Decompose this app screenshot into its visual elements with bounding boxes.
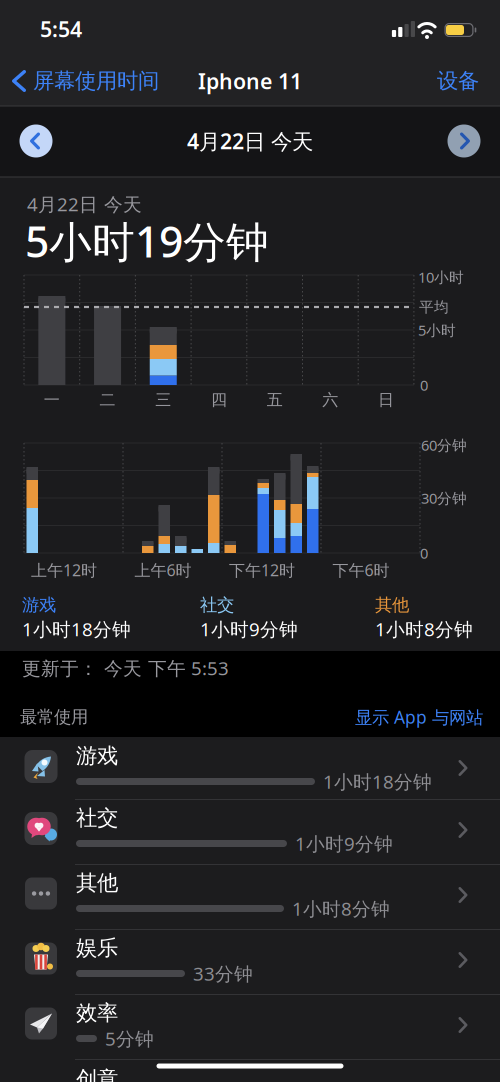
staticText: 一: [44, 390, 60, 410]
button[interactable]: 效率: [0, 995, 500, 1060]
staticText: 1小时18分钟: [323, 769, 432, 794]
staticText: 最常使用: [20, 706, 88, 728]
button[interactable]: 其他: [0, 865, 500, 930]
staticText: 30分钟: [421, 488, 467, 508]
staticText: 33分钟: [193, 961, 253, 986]
staticText: 下午6时: [332, 559, 389, 581]
staticText: 日: [378, 390, 394, 410]
staticText: 4月22日 今天: [187, 127, 313, 155]
button[interactable]: 创意: [0, 1062, 500, 1082]
staticText: 六: [322, 390, 338, 410]
staticText: 社交: [200, 594, 234, 616]
staticText: 设备: [437, 68, 479, 94]
staticText: 1小时8分钟: [292, 896, 390, 921]
staticText: 四: [211, 390, 227, 410]
button[interactable]: 娱乐: [0, 930, 500, 995]
staticText: 显示 App 与网站: [355, 705, 483, 728]
staticText: 五: [267, 390, 283, 410]
button[interactable]: 后一天: [447, 124, 480, 157]
staticText: 更新于： 今天 下午 5:53: [22, 656, 229, 680]
staticText: 平均: [419, 298, 449, 316]
staticText: 上午6时: [134, 559, 191, 581]
staticText: 60分钟: [421, 435, 467, 455]
staticText: 效率: [76, 1000, 118, 1026]
staticText: 1小时9分钟: [200, 617, 298, 641]
staticText: Iphone 11: [198, 67, 302, 95]
staticText: 5:54: [40, 15, 82, 43]
staticText: 其他: [76, 870, 118, 896]
staticText: 创意: [76, 1066, 118, 1082]
staticText: 上午12时: [31, 559, 97, 581]
button[interactable]: 游戏: [0, 738, 500, 800]
button[interactable]: 显示 App 与网站: [355, 705, 483, 728]
staticText: 下午12时: [229, 559, 295, 581]
staticText: 二: [100, 390, 116, 410]
staticText: 10小时: [418, 267, 464, 287]
staticText: 1小时18分钟: [22, 617, 131, 641]
button[interactable]: 设备: [437, 68, 479, 94]
staticText: 1小时8分钟: [375, 617, 473, 641]
staticText: 5小时19分钟: [25, 213, 269, 269]
staticText: 社交: [76, 805, 118, 831]
staticText: 0: [420, 375, 428, 395]
button[interactable]: 社交: [0, 800, 500, 865]
staticText: 5分钟: [105, 1026, 154, 1051]
staticText: 1小时9分钟: [295, 831, 393, 856]
staticText: 游戏: [22, 594, 56, 616]
staticText: 屏幕使用时间: [33, 68, 159, 94]
button[interactable]: 屏幕使用时间: [12, 68, 159, 94]
staticText: 5小时: [418, 320, 456, 340]
staticText: 0: [420, 543, 428, 563]
button[interactable]: 前一天: [19, 124, 52, 157]
staticText: 游戏: [76, 743, 118, 769]
staticText: 三: [155, 390, 171, 410]
staticText: 其他: [375, 594, 409, 616]
staticText: 娱乐: [76, 935, 118, 961]
staticText: 4月22日 今天: [27, 192, 142, 216]
